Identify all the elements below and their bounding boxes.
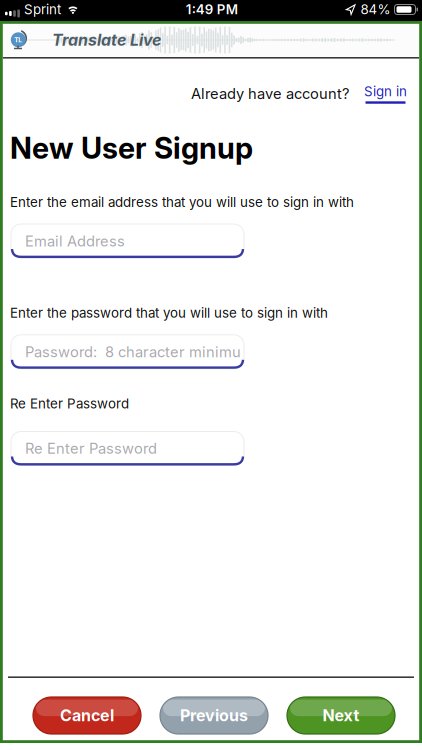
staticText: 1:49 PM — [186, 2, 238, 17]
staticText: Previous — [180, 706, 248, 725]
staticText: Sprint — [24, 2, 61, 17]
staticText: Email Address — [25, 232, 125, 250]
staticText: Enter the password that you will use to … — [10, 305, 328, 321]
button[interactable]: Cancel — [33, 697, 141, 734]
staticText: Re Enter Password — [25, 440, 157, 457]
staticText: Cancel — [60, 706, 114, 725]
staticText: Re Enter Password — [10, 396, 129, 411]
staticText: Enter the email address that you will us… — [10, 194, 354, 210]
staticText: Already have account? — [191, 85, 349, 102]
button[interactable]: Email Address — [11, 224, 244, 258]
staticText: TL — [14, 36, 22, 44]
staticText: New User Signup — [10, 131, 253, 165]
staticText: Translate Live — [52, 31, 161, 49]
button[interactable]: Next — [287, 697, 395, 734]
button[interactable]: Sign in — [349, 84, 407, 104]
button[interactable]: Previous — [160, 697, 268, 734]
staticText: Sign in — [364, 84, 407, 99]
staticText: Password: 8 character minimu — [25, 343, 241, 360]
staticText: Next — [322, 706, 359, 725]
button[interactable]: Re Enter Password — [11, 431, 244, 465]
button[interactable]: Password: 8 character minimu — [11, 335, 244, 369]
staticText: 84% — [360, 2, 390, 17]
